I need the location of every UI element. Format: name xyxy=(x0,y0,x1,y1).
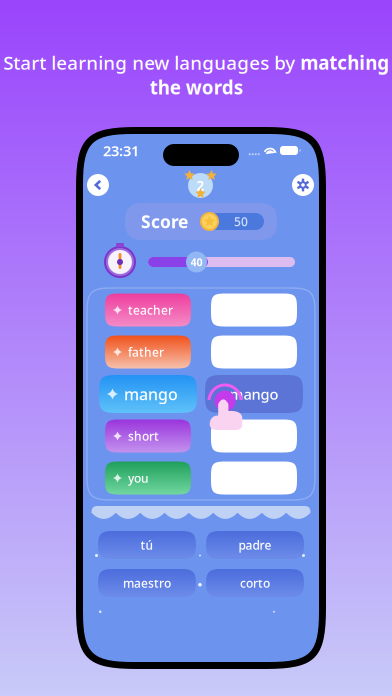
button[interactable]: maestro xyxy=(98,569,196,597)
button[interactable]: corto xyxy=(206,569,304,597)
staticText: maestro xyxy=(123,575,171,591)
staticText: .... xyxy=(248,142,260,158)
staticText: padre xyxy=(238,537,271,553)
staticText: teacher xyxy=(128,302,173,318)
button[interactable]: padre xyxy=(206,531,304,559)
button[interactable]: mango xyxy=(99,375,197,413)
button[interactable]: you xyxy=(105,461,191,494)
staticText: Score xyxy=(141,210,188,233)
button[interactable]: father xyxy=(105,335,191,368)
staticText: tú xyxy=(140,537,153,553)
staticText: short xyxy=(128,428,159,444)
button[interactable]: tú xyxy=(98,531,196,559)
staticText: 23:31 xyxy=(103,141,139,160)
button[interactable]: Back xyxy=(87,174,109,196)
staticText: 2 xyxy=(196,177,204,194)
staticText: you xyxy=(128,470,149,486)
staticText: mango xyxy=(229,384,278,404)
button[interactable]: teacher xyxy=(105,293,191,326)
staticText: 40 xyxy=(190,255,202,269)
staticText: 50 xyxy=(234,213,248,229)
button[interactable]: Settings xyxy=(292,174,314,196)
staticText: mango xyxy=(124,383,178,405)
staticText: corto xyxy=(240,575,270,591)
staticText: Start learning new languages by matching… xyxy=(3,50,389,100)
staticText: father xyxy=(128,344,164,360)
button[interactable]: short xyxy=(105,419,191,452)
